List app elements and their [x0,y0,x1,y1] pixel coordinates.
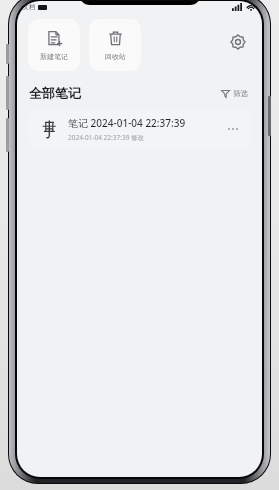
button[interactable]: More options [223,119,243,139]
button[interactable]: 筛选 [219,87,250,100]
staticText: 筛选 [233,89,248,98]
staticText: 回收站 [105,52,126,61]
staticText: 2024-01-04 22:37:39 修改 [68,133,145,142]
staticText: 笔记 2024-01-04 22:37:39 [68,116,186,130]
staticText: 新建笔记 [40,52,68,61]
button[interactable]: 新建笔记 [28,19,80,71]
button[interactable]: 回收站 [89,19,141,71]
button[interactable]: 笔记 2024-01-04 22:37:39 [28,109,251,149]
button[interactable]: Settings [225,29,251,55]
staticText: 全部笔记 [29,85,81,101]
staticText: 文档 [23,3,35,11]
